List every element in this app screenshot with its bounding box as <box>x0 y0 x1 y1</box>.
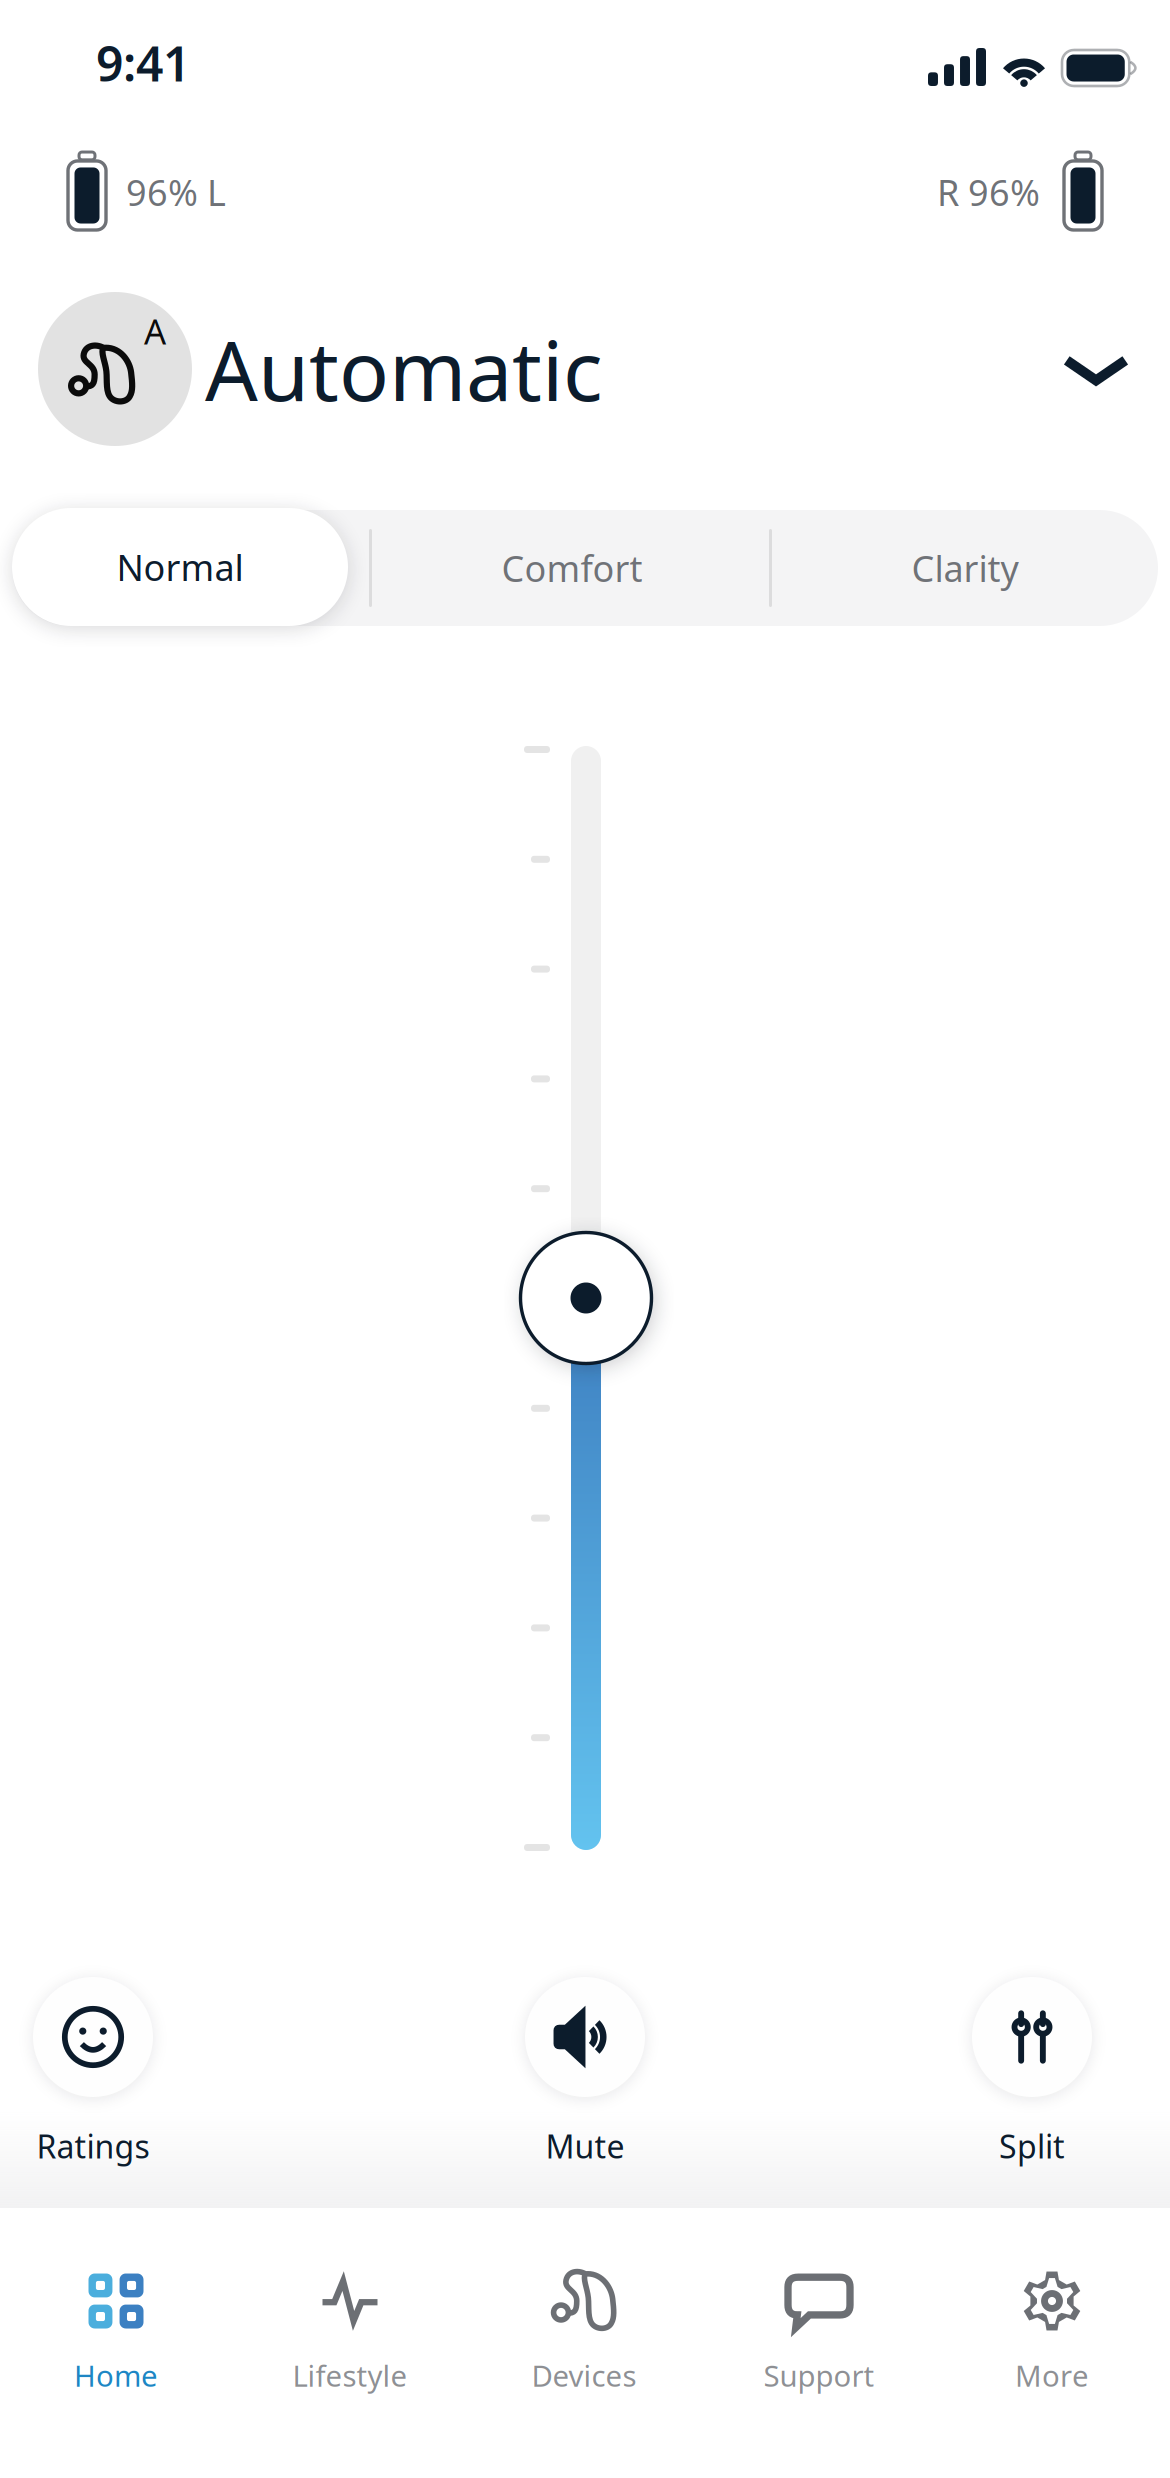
staticText: Home <box>74 2356 158 2395</box>
staticText: Lifestyle <box>292 2356 407 2395</box>
staticText: Split <box>999 2125 1065 2167</box>
staticText: More <box>1015 2356 1089 2395</box>
button[interactable]: Clarity <box>12 510 1158 626</box>
staticText: Mute <box>545 2125 624 2167</box>
button[interactable]: Split <box>915 1975 1149 2175</box>
button[interactable]: Normal <box>12 508 348 626</box>
staticText: R 96% <box>937 168 1040 216</box>
staticText: Normal <box>116 543 243 591</box>
staticText: Devices <box>531 2356 636 2395</box>
button[interactable]: Volume <box>520 1232 651 1363</box>
staticText: Support <box>763 2356 874 2395</box>
button[interactable]: Mute <box>468 1975 702 2175</box>
staticText: Ratings <box>36 2125 149 2167</box>
button[interactable]: Lifestyle <box>233 2240 467 2400</box>
button[interactable]: More <box>935 2240 1169 2400</box>
button[interactable]: Devices <box>467 2240 701 2400</box>
staticText: 96% L <box>126 168 226 216</box>
button[interactable]: Ratings <box>0 1975 210 2175</box>
staticText: Comfort <box>501 544 642 592</box>
staticText: A <box>144 308 166 354</box>
button[interactable]: Home <box>0 2240 233 2400</box>
staticText: Clarity <box>911 544 1018 592</box>
button[interactable]: Support <box>702 2240 936 2400</box>
button[interactable]: Comfort <box>12 510 772 626</box>
button[interactable]: A <box>0 0 1170 470</box>
staticText: Automatic <box>205 314 603 424</box>
staticText: 9:41 <box>96 31 190 95</box>
